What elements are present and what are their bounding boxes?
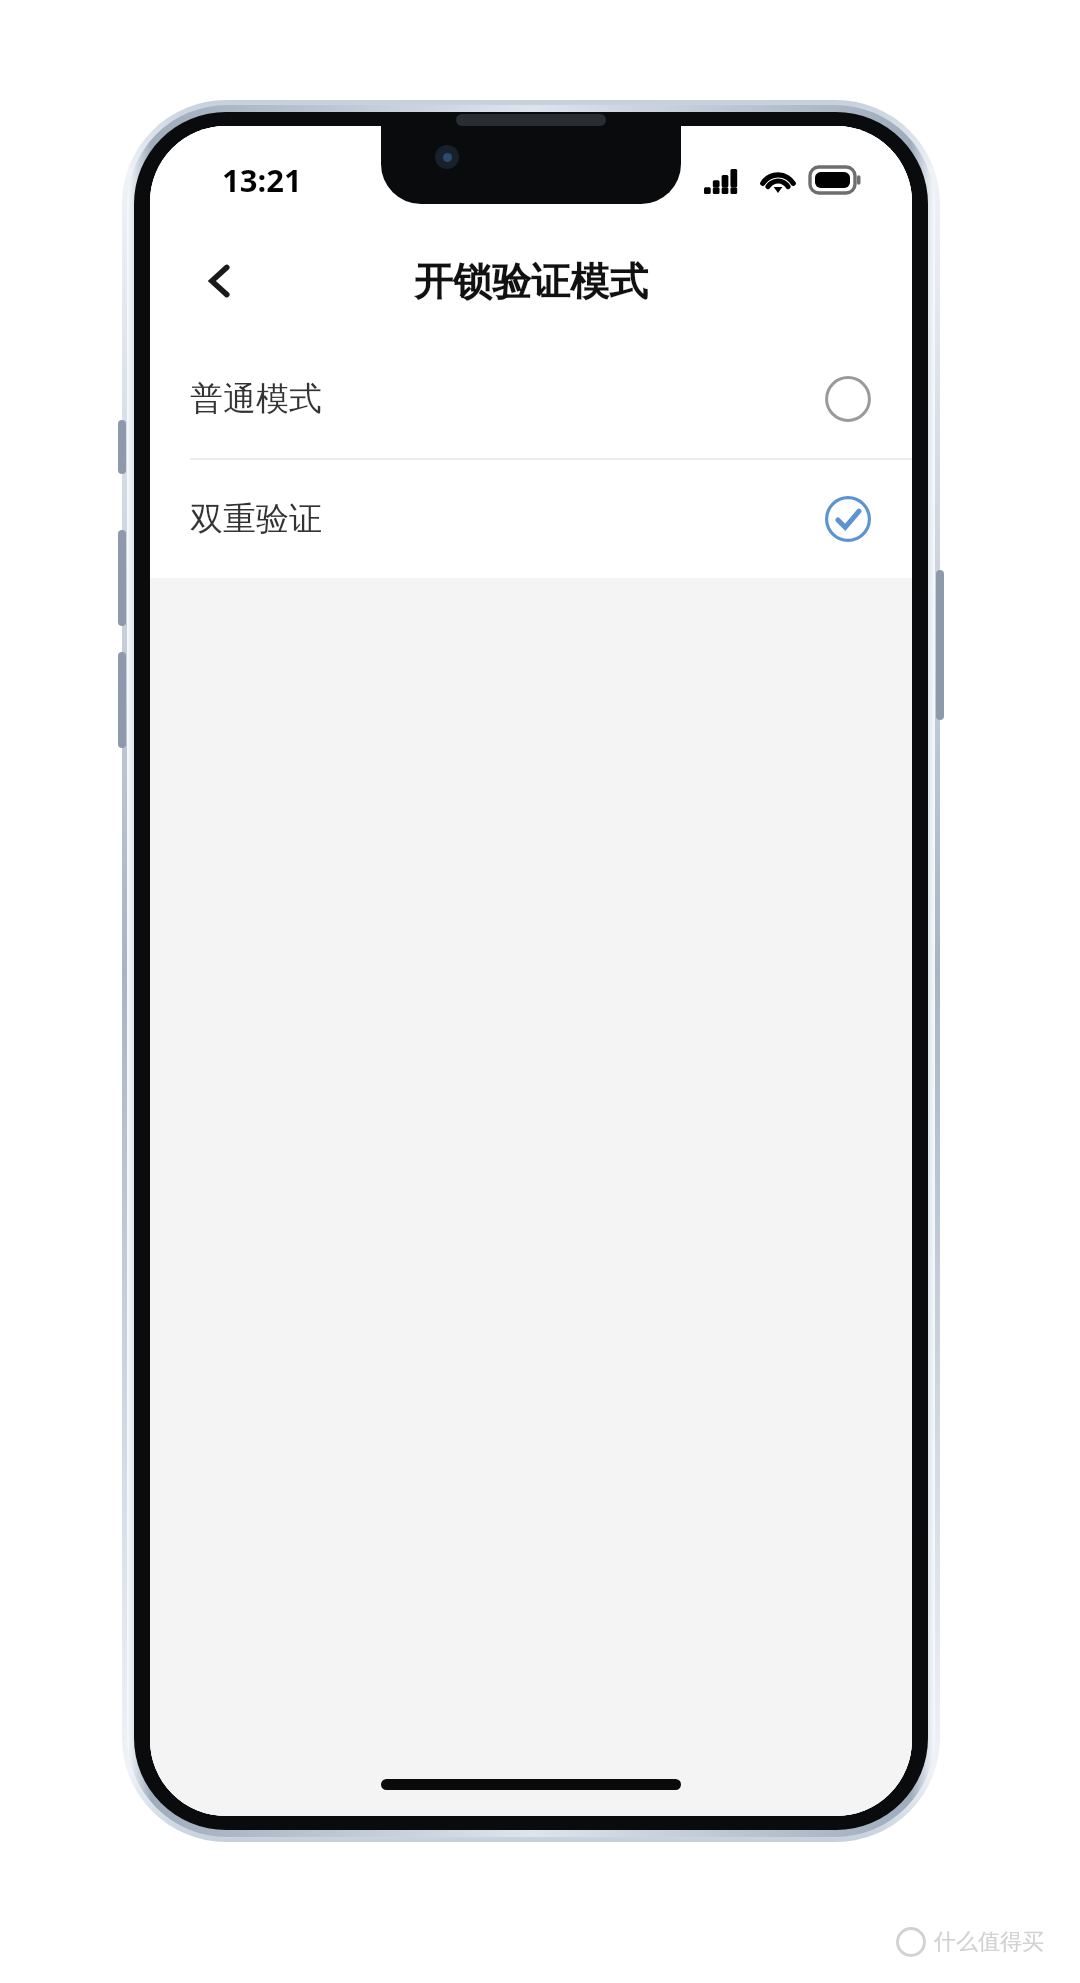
staticText: 13:21 xyxy=(222,159,302,201)
staticText: 开锁验证模式 xyxy=(414,257,648,306)
button[interactable]: 普通模式 xyxy=(150,340,912,458)
button[interactable]: 双重验证 xyxy=(150,460,912,578)
button[interactable]: Back xyxy=(180,241,260,321)
staticText: 双重验证 xyxy=(190,498,322,540)
staticText: 什么值得买 xyxy=(934,1928,1044,1956)
staticText: 普通模式 xyxy=(190,378,322,420)
